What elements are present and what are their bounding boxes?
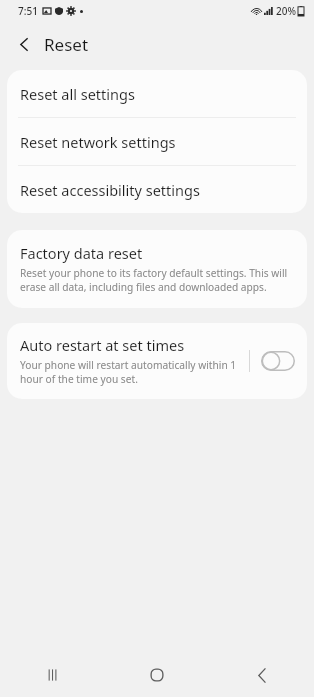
staticText: Reset all settings (20, 84, 135, 104)
staticText: Your phone will restart automatically wi… (20, 358, 243, 386)
button[interactable]: Auto restart at set times (257, 347, 299, 375)
staticText: Auto restart at set times (20, 335, 185, 355)
button[interactable]: Reset network settings (7, 118, 307, 165)
staticText: 20% (276, 4, 296, 18)
staticText: Factory data reset (20, 243, 143, 263)
staticText: 7:51 (18, 4, 38, 18)
button[interactable]: Home (104, 653, 209, 697)
staticText: Reset network settings (20, 132, 176, 152)
staticText: Reset your phone to its factory default … (20, 266, 291, 294)
button[interactable]: Back (10, 30, 38, 58)
button[interactable]: Reset accessibility settings (7, 166, 307, 213)
staticText: Reset accessibility settings (20, 180, 200, 200)
staticText: Reset (44, 33, 89, 56)
button[interactable]: Auto restart at set times (7, 323, 307, 399)
button[interactable]: Back (209, 653, 314, 697)
button[interactable]: Factory data reset (7, 230, 307, 308)
button[interactable]: Reset all settings (7, 70, 307, 117)
button[interactable]: Recent apps (0, 653, 104, 697)
